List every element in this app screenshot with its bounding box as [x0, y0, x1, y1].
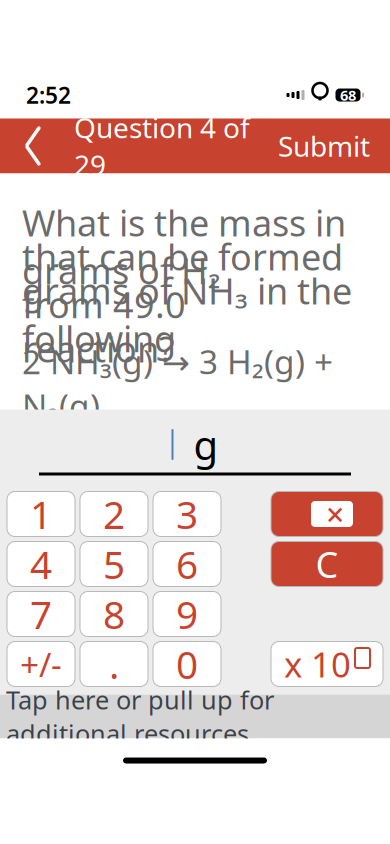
- button[interactable]: Tap here or pull up for additional resou…: [0, 694, 390, 738]
- button[interactable]: 7: [7, 591, 75, 636]
- button[interactable]: 2: [80, 491, 148, 536]
- staticText: 6: [176, 538, 198, 590]
- staticText: 68: [340, 85, 356, 105]
- button[interactable]: Delete: [271, 491, 383, 536]
- staticText: 8: [103, 588, 125, 640]
- staticText: 0: [176, 638, 198, 690]
- staticText: ×: [326, 493, 344, 535]
- button[interactable]: .: [80, 641, 148, 686]
- staticText: 5: [103, 538, 125, 590]
- staticText: C: [315, 540, 338, 588]
- staticText: 3: [176, 488, 198, 540]
- button[interactable]: Back: [6, 118, 60, 173]
- button[interactable]: Times ten to the power: [271, 641, 383, 686]
- staticText: grams of NH₃ in the following: [22, 267, 352, 362]
- staticText: 4: [30, 538, 52, 590]
- button[interactable]: 4: [7, 541, 75, 586]
- button[interactable]: 5: [80, 541, 148, 586]
- button[interactable]: 0: [153, 641, 221, 686]
- button[interactable]: 1: [7, 491, 75, 536]
- staticText: x 10: [284, 641, 351, 687]
- staticText: g: [193, 418, 218, 471]
- staticText: .: [109, 638, 119, 690]
- button[interactable]: Submit: [264, 118, 384, 173]
- staticText: 9: [176, 588, 198, 640]
- button[interactable]: +/-: [7, 641, 75, 686]
- staticText: 2: [103, 488, 125, 540]
- button[interactable]: 3: [153, 491, 221, 536]
- staticText: Submit: [278, 127, 370, 165]
- button[interactable]: 6: [153, 541, 221, 586]
- staticText: 2:52: [26, 80, 71, 110]
- staticText: 2 NH₃(g) → 3 H₂(g) + N₂(g): [22, 339, 333, 428]
- staticText: +/-: [20, 642, 62, 686]
- button[interactable]: 8: [80, 591, 148, 636]
- button[interactable]: C: [271, 541, 383, 586]
- staticText: reaction?: [22, 325, 175, 372]
- staticText: Tap here or pull up for additional resou…: [6, 683, 274, 750]
- staticText: 7: [30, 588, 52, 640]
- button[interactable]: 9: [153, 591, 221, 636]
- staticText: 1: [30, 488, 52, 540]
- staticText: What is the mass in grams of H₂: [22, 199, 346, 294]
- staticText: that can be formed from 49.0: [22, 233, 343, 328]
- staticText: Question 4 of 29: [74, 109, 250, 183]
